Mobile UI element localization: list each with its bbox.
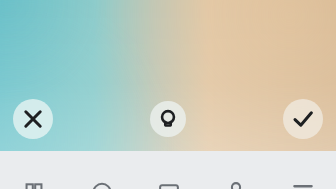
button[interactable]: Suggestions: [150, 101, 186, 137]
button[interactable]: Cancel: [13, 99, 53, 139]
button[interactable]: Cards: [135, 151, 202, 189]
button[interactable]: Done: [283, 99, 323, 139]
button[interactable]: Profile: [202, 151, 269, 189]
button[interactable]: Menu: [269, 151, 336, 189]
button[interactable]: Library: [0, 151, 68, 189]
button[interactable]: Explore: [68, 151, 135, 189]
